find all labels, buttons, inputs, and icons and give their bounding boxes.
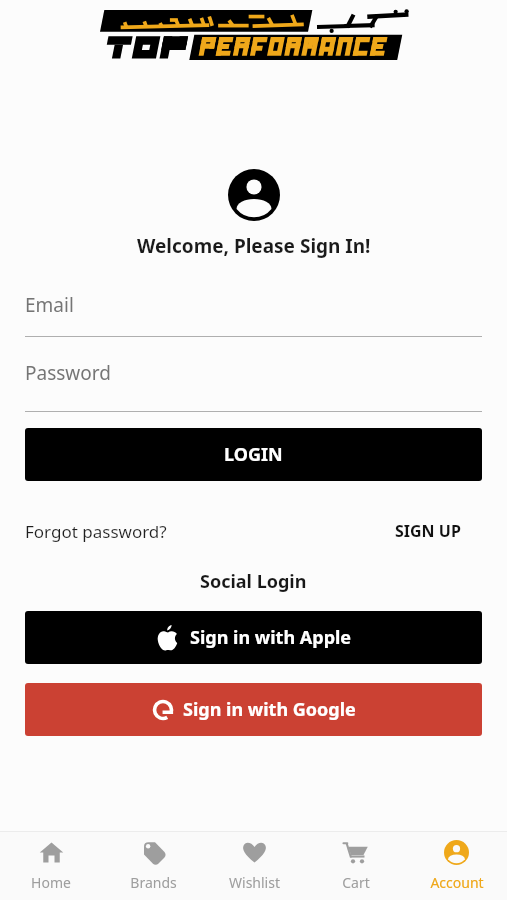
button[interactable]: Account — [406, 832, 507, 900]
button[interactable]: Wishlist — [204, 832, 305, 900]
staticText: Password — [25, 360, 111, 382]
button[interactable]: Forgot password? — [25, 514, 167, 548]
staticText: Welcome, Please Sign In! — [137, 233, 371, 259]
staticText: Home — [31, 873, 71, 892]
staticText: Sign in with Apple — [190, 625, 352, 650]
button[interactable]: Sign in with Apple — [25, 611, 482, 664]
button[interactable]: Brands — [102, 832, 204, 900]
staticText: Cart — [342, 873, 370, 892]
staticText: Sign in with Google — [183, 697, 356, 722]
button[interactable]: SIGN UP — [395, 514, 461, 548]
staticText: Account — [430, 873, 484, 892]
staticText: Forgot password? — [25, 520, 167, 543]
staticText: Social Login — [200, 569, 307, 594]
staticText: SIGN UP — [395, 520, 461, 542]
button[interactable]: Home — [0, 832, 102, 900]
staticText: Wishlist — [229, 873, 280, 892]
staticText: Brands — [130, 873, 177, 892]
button[interactable]: Sign in with Google — [25, 683, 482, 736]
staticText: LOGIN — [224, 442, 283, 467]
button[interactable]: LOGIN — [25, 428, 482, 481]
staticText: Email — [25, 292, 74, 314]
button[interactable]: Cart — [305, 832, 406, 900]
